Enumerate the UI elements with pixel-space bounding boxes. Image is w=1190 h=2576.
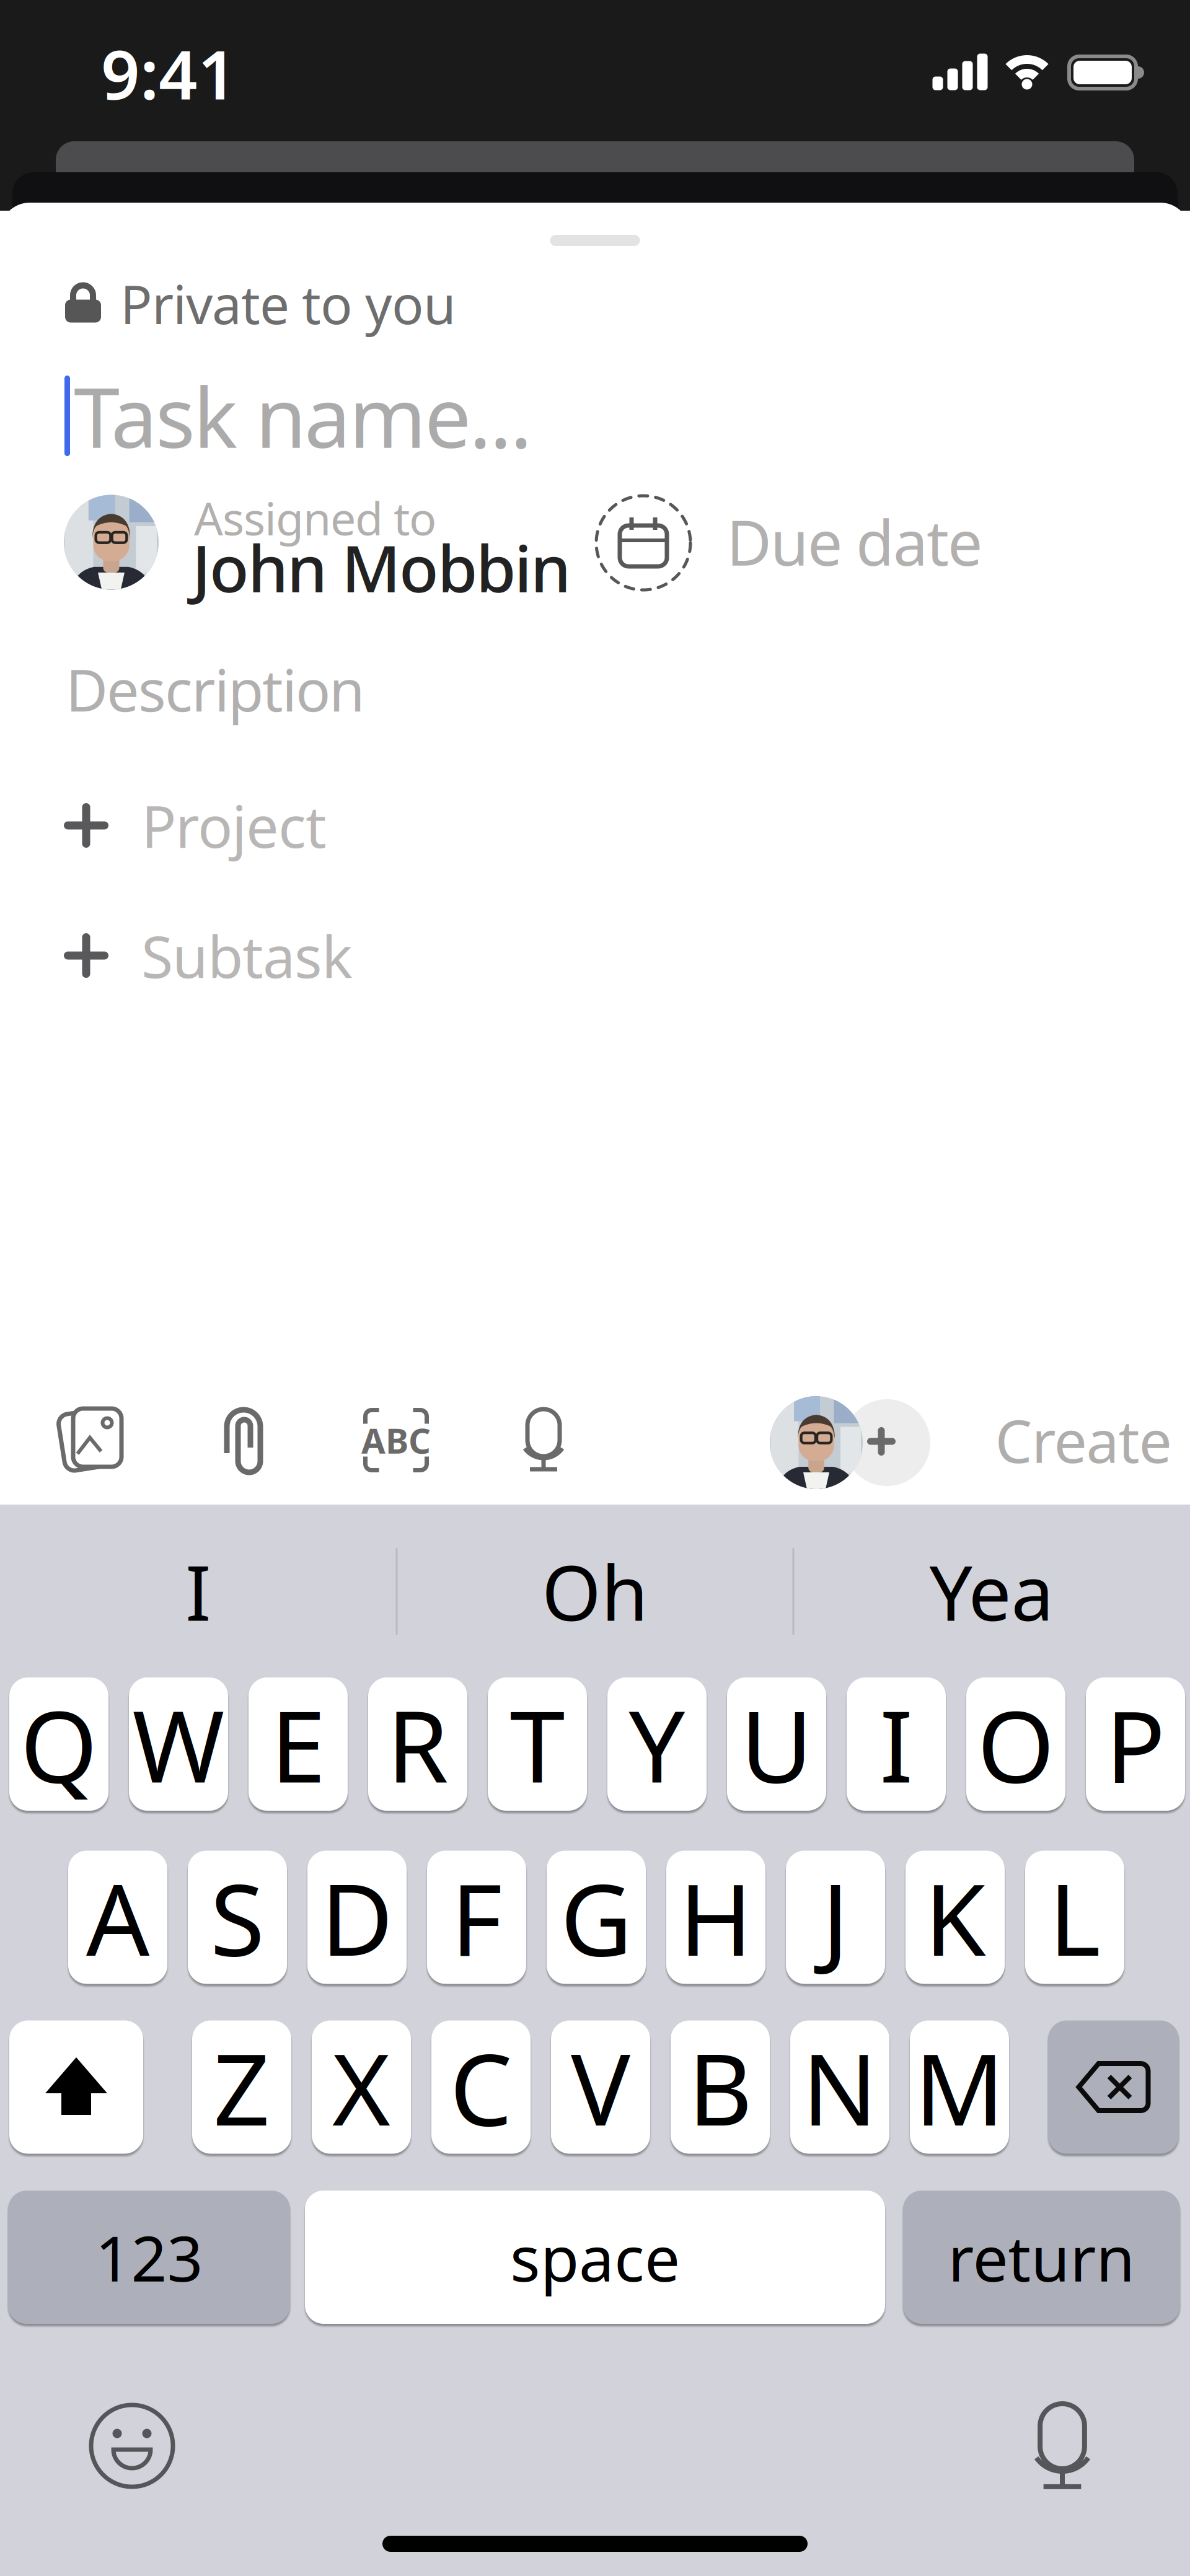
button[interactable]: S <box>188 1851 287 1984</box>
staticText: Oh <box>542 1541 648 1642</box>
button[interactable]: Emoji <box>86 2399 178 2492</box>
button[interactable]: O <box>966 1677 1065 1811</box>
button[interactable]: V <box>551 2020 650 2154</box>
button[interactable]: 123 <box>8 2191 290 2324</box>
button[interactable]: R <box>368 1677 467 1811</box>
staticText: H <box>679 1851 753 1983</box>
staticText: Due date <box>726 500 982 583</box>
button[interactable]: N <box>790 2020 889 2154</box>
staticText: S <box>210 1851 265 1983</box>
staticText: F <box>451 1851 502 1983</box>
button[interactable]: G <box>547 1851 646 1984</box>
staticText: L <box>1049 1851 1101 1983</box>
button[interactable]: A <box>68 1851 167 1984</box>
button[interactable]: Delete <box>1048 2020 1179 2154</box>
button[interactable]: X <box>312 2020 411 2154</box>
staticText: N <box>802 2021 878 2153</box>
staticText: Yea <box>929 1541 1054 1642</box>
staticText: J <box>822 1851 849 1983</box>
staticText: Private to you <box>120 269 456 339</box>
button[interactable]: J <box>786 1851 885 1984</box>
button[interactable]: space <box>305 2191 885 2324</box>
button[interactable]: Z <box>192 2020 291 2154</box>
staticText: X <box>332 2021 390 2153</box>
button[interactable]: F <box>427 1851 526 1984</box>
button[interactable]: I <box>12 1548 384 1635</box>
button[interactable]: P <box>1086 1677 1185 1811</box>
button[interactable]: B <box>671 2020 770 2154</box>
staticText: G <box>560 1851 632 1983</box>
button[interactable]: return <box>903 2191 1180 2324</box>
staticText: A <box>86 1851 149 1983</box>
staticText: E <box>271 1678 326 1810</box>
button[interactable]: E <box>249 1677 348 1811</box>
button[interactable]: M <box>910 2020 1009 2154</box>
staticText: U <box>740 1678 813 1810</box>
button[interactable]: W <box>129 1677 228 1811</box>
staticText: Subtask <box>141 917 353 994</box>
staticText: 123 <box>95 2215 203 2299</box>
staticText: B <box>688 2021 752 2153</box>
button[interactable]: Shift <box>9 2020 143 2154</box>
staticText: P <box>1105 1678 1166 1810</box>
button[interactable]: Yea <box>806 1548 1178 1635</box>
button[interactable]: Due date <box>596 496 943 590</box>
button[interactable]: Dictate <box>513 1403 575 1477</box>
button[interactable]: U <box>727 1677 826 1811</box>
staticText: space <box>510 2215 680 2299</box>
staticText: M <box>915 2021 1004 2153</box>
staticText: Description <box>66 651 365 727</box>
staticText: V <box>571 2021 630 2153</box>
button[interactable]: Oh <box>409 1548 781 1635</box>
staticText: W <box>132 1678 225 1810</box>
button[interactable]: C <box>431 2020 531 2154</box>
button[interactable]: Add collaborator <box>770 1396 931 1489</box>
button[interactable]: Create <box>981 1406 1186 1474</box>
button[interactable]: I <box>847 1677 946 1811</box>
staticText: R <box>387 1678 449 1810</box>
button[interactable]: L <box>1025 1851 1124 1984</box>
button[interactable]: Scan text <box>353 1397 439 1484</box>
button[interactable]: Dictation <box>1028 2400 1096 2493</box>
staticText: Create <box>995 1401 1172 1479</box>
staticText: ABC <box>361 1417 431 1463</box>
button[interactable]: Attach file <box>208 1397 283 1484</box>
staticText: I <box>185 1541 211 1642</box>
staticText: I <box>879 1678 913 1810</box>
button[interactable]: K <box>906 1851 1005 1984</box>
button[interactable]: Photos <box>47 1396 134 1482</box>
staticText: T <box>510 1678 565 1810</box>
staticText: Project <box>141 787 327 864</box>
button[interactable]: D <box>307 1851 407 1984</box>
button[interactable]: Project <box>64 791 374 859</box>
button[interactable]: Assigned to <box>64 495 547 590</box>
staticText: C <box>450 2021 512 2153</box>
staticText: Assigned to <box>194 488 436 548</box>
button[interactable]: Q <box>9 1677 108 1811</box>
staticText: D <box>321 1851 393 1983</box>
staticText: O <box>977 1678 1055 1810</box>
staticText: John Mobbin <box>192 524 571 610</box>
staticText: K <box>924 1851 986 1983</box>
staticText: Z <box>213 2021 270 2153</box>
button[interactable]: H <box>666 1851 765 1984</box>
staticText: 9:41 <box>101 28 237 118</box>
staticText: Task name... <box>74 361 532 471</box>
staticText: return <box>948 2215 1135 2299</box>
button[interactable]: Y <box>607 1677 707 1811</box>
staticText: Y <box>629 1678 685 1810</box>
button[interactable]: T <box>488 1677 587 1811</box>
button[interactable]: Private to you <box>64 276 573 332</box>
staticText: Q <box>20 1678 98 1810</box>
button[interactable]: Subtask <box>64 921 374 990</box>
